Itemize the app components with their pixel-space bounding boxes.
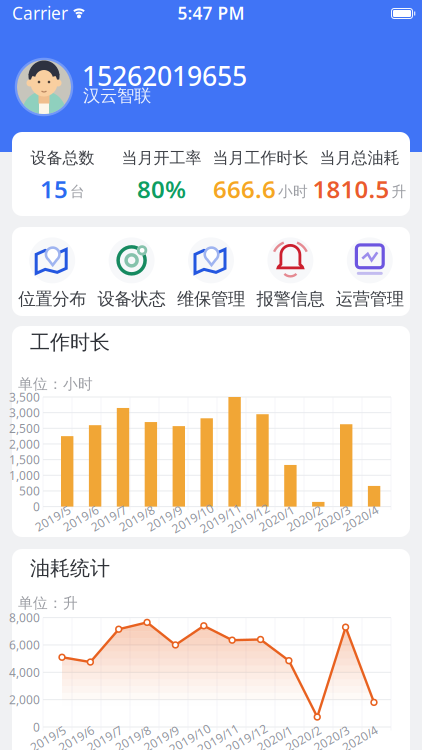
staticText: 2019/9 bbox=[142, 730, 181, 746]
staticText: 2019/7 bbox=[89, 510, 128, 526]
staticText: 2020/2 bbox=[284, 730, 323, 746]
staticText: 666.6 bbox=[213, 173, 276, 205]
staticText: 15 bbox=[40, 173, 68, 205]
staticText: 3,500 bbox=[9, 389, 40, 405]
staticText: 报警信息 bbox=[256, 288, 324, 310]
staticText: 单位：升 bbox=[18, 594, 78, 612]
staticText: 设备总数 bbox=[30, 148, 94, 168]
staticText: 2020/2 bbox=[285, 510, 324, 526]
staticText: 2019/8 bbox=[117, 510, 156, 526]
staticText: 小时 bbox=[278, 182, 308, 200]
staticText: 2020/3 bbox=[312, 730, 351, 746]
staticText: 2019/11 bbox=[195, 730, 241, 746]
button[interactable]: 设备状态 bbox=[98, 237, 166, 310]
staticText: 1,500 bbox=[9, 452, 40, 468]
staticText: 2019/10 bbox=[170, 510, 216, 526]
staticText: 当月工作时长 bbox=[212, 148, 308, 168]
button[interactable]: 15262019655 bbox=[0, 55, 422, 121]
staticText: 2020/4 bbox=[341, 510, 380, 526]
button[interactable]: 位置分布 bbox=[18, 237, 86, 310]
staticText: Carrier bbox=[12, 1, 68, 24]
staticText: 2019/12 bbox=[223, 730, 269, 746]
staticText: 维保管理 bbox=[177, 288, 245, 310]
staticText: 运营管理 bbox=[336, 288, 404, 310]
staticText: 4,000 bbox=[9, 664, 40, 680]
staticText: 2019/10 bbox=[167, 730, 213, 746]
staticText: 2019/7 bbox=[85, 730, 124, 746]
staticText: 2020/1 bbox=[257, 510, 296, 526]
staticText: 位置分布 bbox=[18, 288, 86, 310]
staticText: 2019/6 bbox=[61, 510, 100, 526]
staticText: 1810.5 bbox=[312, 173, 389, 205]
staticText: 当月总油耗 bbox=[319, 148, 399, 168]
staticText: 2019/9 bbox=[145, 510, 184, 526]
staticText: 15262019655 bbox=[82, 58, 247, 93]
staticText: 1,000 bbox=[9, 467, 40, 483]
staticText: 设备状态 bbox=[98, 288, 166, 310]
staticText: 油耗统计 bbox=[30, 556, 110, 581]
staticText: 台 bbox=[70, 182, 85, 200]
staticText: 2,000 bbox=[9, 692, 40, 708]
button[interactable]: 报警信息 bbox=[256, 237, 324, 310]
staticText: 0 bbox=[33, 719, 40, 735]
staticText: 单位：小时 bbox=[18, 375, 93, 393]
button[interactable]: 维保管理 bbox=[177, 237, 245, 310]
staticText: 2020/1 bbox=[255, 730, 294, 746]
staticText: 6,000 bbox=[9, 637, 40, 653]
staticText: 80% bbox=[137, 173, 186, 205]
staticText: 3,000 bbox=[9, 405, 40, 421]
staticText: 500 bbox=[19, 483, 40, 499]
staticText: 工作时长 bbox=[30, 330, 110, 355]
staticText: 8,000 bbox=[9, 610, 40, 625]
staticText: 0 bbox=[33, 499, 40, 514]
staticText: 升 bbox=[391, 182, 406, 200]
staticText: 2019/5 bbox=[28, 730, 67, 746]
staticText: 2,500 bbox=[9, 420, 40, 436]
staticText: 2019/5 bbox=[33, 510, 72, 526]
staticText: 2019/11 bbox=[198, 510, 244, 526]
staticText: 2019/6 bbox=[57, 730, 96, 746]
staticText: 2,000 bbox=[9, 436, 40, 452]
button[interactable]: 运营管理 bbox=[336, 237, 404, 310]
staticText: 汉云智联 bbox=[83, 85, 151, 106]
staticText: 2019/12 bbox=[226, 510, 272, 526]
staticText: 5:47 PM bbox=[177, 1, 244, 24]
staticText: 当月开工率 bbox=[121, 148, 201, 168]
staticText: 2019/8 bbox=[114, 730, 153, 746]
staticText: 2020/4 bbox=[340, 730, 379, 746]
staticText: 2020/3 bbox=[313, 510, 352, 526]
